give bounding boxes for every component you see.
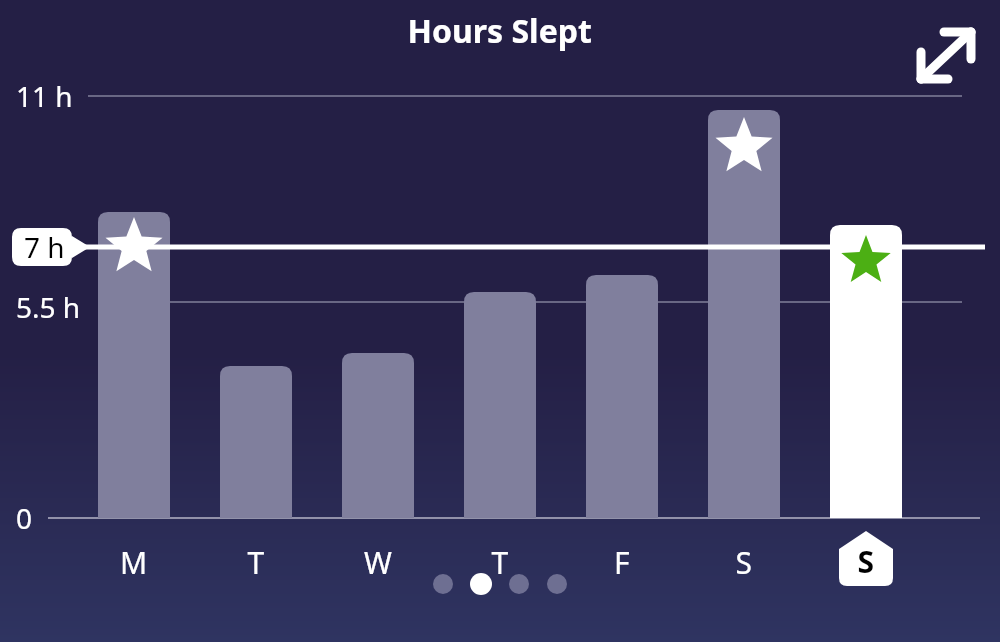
button[interactable]: Expand chart — [905, 18, 989, 102]
